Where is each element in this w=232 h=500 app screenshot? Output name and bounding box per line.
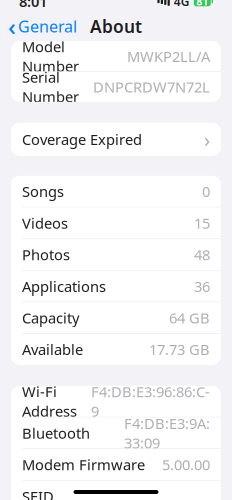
staticText: 64 GB bbox=[169, 308, 210, 328]
staticText: Capacity bbox=[22, 308, 79, 328]
staticText: 5.00.00 bbox=[162, 455, 210, 474]
staticText: F4:DB:E3:96:86:C9 bbox=[91, 382, 210, 421]
staticText: 4G bbox=[174, 0, 190, 9]
staticText: DNPCRDW7N72L bbox=[93, 77, 210, 97]
staticText: 8:01 bbox=[19, 0, 47, 11]
button[interactable]: SEID bbox=[11, 481, 221, 500]
staticText: Model Number bbox=[22, 37, 79, 76]
staticText: General bbox=[18, 16, 77, 37]
staticText: › bbox=[204, 126, 210, 153]
staticText: Coverage Expired bbox=[22, 130, 142, 149]
staticText: SEID bbox=[22, 486, 54, 500]
button[interactable]: Capacity bbox=[11, 302, 221, 333]
staticText: 48 bbox=[194, 245, 210, 264]
button[interactable]: Songs bbox=[11, 176, 221, 207]
button[interactable]: Serial Number bbox=[11, 72, 221, 102]
staticText: About bbox=[90, 15, 142, 38]
staticText: 36 bbox=[194, 276, 210, 296]
staticText: Applications bbox=[22, 276, 106, 296]
button[interactable]: Photos bbox=[11, 239, 221, 270]
button[interactable]: Model Number bbox=[11, 41, 221, 71]
staticText: ‹ bbox=[8, 10, 16, 42]
staticText: Available bbox=[22, 340, 83, 359]
staticText: 17.73 GB bbox=[149, 340, 210, 359]
staticText: 81 bbox=[196, 0, 208, 8]
button[interactable]: ‹ bbox=[0, 14, 85, 38]
button[interactable]: Coverage Expired bbox=[11, 123, 221, 156]
staticText: Modem Firmware bbox=[22, 455, 145, 474]
staticText: MWKP2LL/A bbox=[127, 47, 210, 66]
staticText: Serial Number bbox=[22, 67, 79, 106]
button[interactable]: Wi-Fi Address bbox=[11, 386, 221, 417]
button[interactable]: Available bbox=[11, 334, 221, 365]
button[interactable]: Bluetooth bbox=[11, 417, 221, 448]
button[interactable]: Applications bbox=[11, 271, 221, 302]
staticText: 0 bbox=[202, 182, 210, 201]
staticText: Videos bbox=[22, 213, 68, 233]
staticText: Wi-Fi Address bbox=[22, 382, 77, 421]
button[interactable]: Videos bbox=[11, 207, 221, 238]
staticText: F4:DB:E3:9A:33:09 bbox=[124, 413, 210, 452]
button[interactable]: Modem Firmware bbox=[11, 449, 221, 480]
staticText: Bluetooth bbox=[22, 423, 90, 443]
staticText: Photos bbox=[22, 245, 70, 264]
staticText: 15 bbox=[194, 213, 210, 233]
staticText: Songs bbox=[22, 182, 64, 201]
